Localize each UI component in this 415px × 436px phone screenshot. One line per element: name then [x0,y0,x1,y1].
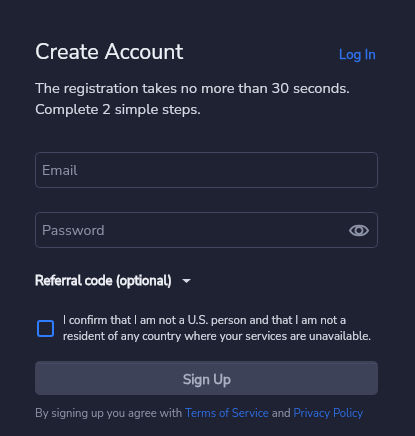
staticText: Log In [339,46,376,64]
staticText: The registration takes no more than 30 s… [35,78,350,119]
staticText: Referral code (optional) [35,272,172,290]
button[interactable]: Email [35,152,378,188]
staticText: Sign Up [183,370,231,388]
staticText: By signing up you agree with Terms of Se… [35,406,364,421]
button[interactable]: Referral code (optional) [35,272,191,290]
staticText: Email [42,161,78,180]
button[interactable]: Password [35,212,378,248]
button[interactable]: I confirm that I am not a U.S. person an… [35,312,387,344]
button[interactable]: Show password [348,219,370,241]
staticText: I confirm that I am not a U.S. person an… [63,312,387,344]
button[interactable]: Sign Up [35,361,378,395]
staticText: Password [42,221,105,240]
button[interactable]: Log In [339,46,376,64]
button[interactable]: By signing up you agree with Terms of Se… [35,406,364,424]
staticText: Create Account [35,37,184,66]
